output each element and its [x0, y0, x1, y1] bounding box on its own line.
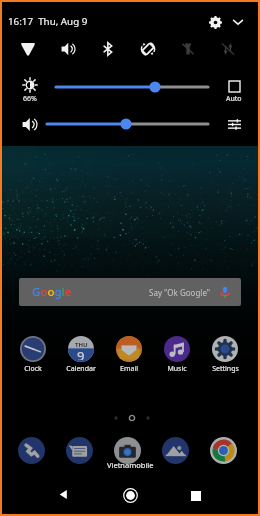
staticText: 16:17 Thu, Aug 9	[8, 15, 88, 28]
button[interactable]: Wi-Fi	[12, 35, 44, 63]
button[interactable]: Auto rotate	[132, 35, 164, 63]
staticText: Google	[32, 284, 72, 300]
button[interactable]: Sound settings	[221, 112, 248, 136]
button[interactable]: Settings	[203, 336, 247, 374]
staticText: Say "Ok Google"	[149, 287, 211, 298]
staticText: 66%	[23, 94, 37, 104]
button[interactable]: Bluetooth	[92, 35, 124, 63]
button[interactable]: Music	[155, 336, 199, 374]
button[interactable]: THU	[59, 336, 103, 374]
button[interactable]: Sound	[52, 35, 84, 63]
button[interactable]: Phone	[9, 437, 53, 467]
button[interactable]: Mobile data	[212, 35, 244, 63]
staticText: Settings	[212, 364, 239, 374]
button[interactable]: Email	[107, 336, 151, 374]
button[interactable]: Flashlight	[172, 35, 204, 63]
button[interactable]: Chrome	[201, 437, 245, 467]
button[interactable]: Clock	[11, 336, 55, 374]
button[interactable]: Auto brightness	[219, 81, 248, 107]
staticText: Clock	[24, 364, 42, 374]
button[interactable]: Home	[110, 477, 150, 513]
button[interactable]: Back	[43, 476, 83, 512]
staticText: Calendar	[66, 364, 96, 374]
staticText: Email	[120, 364, 138, 374]
staticText: THU	[75, 341, 88, 349]
button[interactable]: Camera	[105, 437, 149, 467]
button[interactable]: Collapse panel	[226, 10, 250, 34]
button[interactable]: Brightness	[15, 78, 44, 106]
button[interactable]: Recent apps	[176, 478, 216, 514]
button[interactable]: Photos	[153, 437, 197, 467]
button[interactable]: Volume	[16, 112, 43, 136]
button[interactable]: Messages	[57, 437, 101, 467]
button[interactable]: Search	[19, 278, 241, 306]
staticText: Auto	[226, 94, 242, 104]
staticText: Music	[167, 364, 187, 374]
button[interactable]: Settings	[203, 10, 227, 34]
staticText: Vietnamobile	[107, 460, 154, 470]
staticText: 9	[77, 347, 85, 360]
